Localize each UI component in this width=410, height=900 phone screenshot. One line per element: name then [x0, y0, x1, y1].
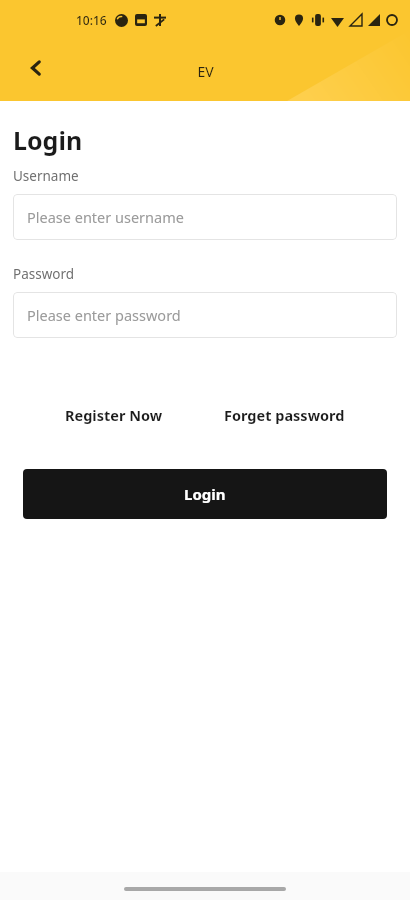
button[interactable]: Please enter password — [13, 292, 397, 338]
staticText: Password — [13, 265, 75, 283]
staticText: EV — [197, 62, 214, 81]
button[interactable]: Please enter username — [13, 194, 397, 240]
button[interactable]: Register Now — [57, 399, 171, 431]
staticText: Forget password — [224, 405, 345, 425]
button[interactable]: Forget password — [216, 399, 353, 431]
staticText: Please enter username — [27, 207, 184, 227]
staticText: Register Now — [65, 405, 163, 425]
staticText: Username — [13, 167, 79, 185]
staticText: 10:16 — [76, 12, 107, 28]
staticText: Login — [13, 123, 83, 157]
button[interactable]: Back — [18, 50, 54, 86]
staticText: Login — [184, 484, 226, 504]
staticText: Please enter password — [27, 305, 181, 325]
button[interactable]: Login — [23, 469, 387, 519]
